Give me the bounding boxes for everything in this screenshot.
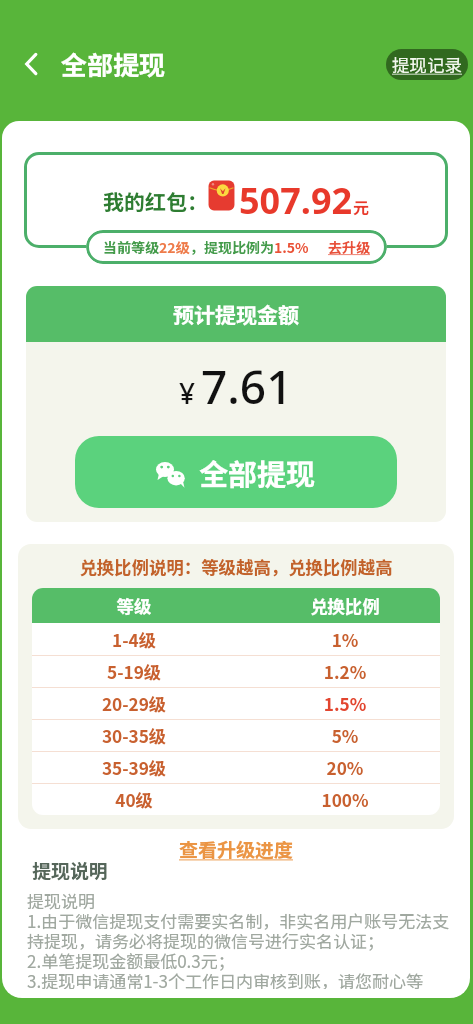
staticText: 20-29级	[32, 691, 236, 716]
button[interactable]: 提现记录	[386, 49, 468, 80]
staticText: 35-39级	[32, 755, 236, 780]
button[interactable]: Back	[4, 39, 60, 89]
staticText: 20%	[243, 755, 440, 780]
staticText: 7.61	[201, 355, 293, 418]
staticText: 1.5%	[274, 237, 309, 257]
staticText: 查看升级进度	[179, 835, 294, 863]
staticText: ¥	[179, 374, 196, 412]
staticText: 22级	[159, 237, 190, 257]
staticText: 去升级	[328, 237, 370, 257]
staticText: 1-4级	[32, 627, 236, 652]
staticText: 5%	[243, 723, 440, 748]
button[interactable]: 查看升级进度	[173, 833, 300, 865]
staticText: 提现记录	[392, 52, 462, 77]
staticText: 1.5%	[243, 691, 440, 716]
staticText: 507.92	[239, 176, 353, 225]
button[interactable]: 当前等级	[86, 230, 387, 264]
staticText: 40级	[32, 787, 236, 812]
staticText: 预计提现金额	[173, 299, 299, 329]
staticText: 全部提现	[61, 45, 166, 83]
staticText: ，提现比例为	[190, 237, 274, 257]
staticText: 兑换比例	[243, 593, 440, 618]
staticText: 提现说明 1.由于微信提现支付需要实名制，非实名用户账号无法支持提现，请务必将提…	[27, 888, 452, 989]
button[interactable]: 全部提现	[75, 436, 397, 508]
staticText: 100%	[243, 787, 440, 812]
staticText: 我的红包：	[103, 186, 208, 216]
staticText: 等级	[32, 593, 236, 618]
staticText: 30-35级	[32, 723, 236, 748]
staticText: 1.2%	[243, 659, 440, 684]
staticText: 5-19级	[32, 659, 236, 684]
staticText: 提现说明	[32, 856, 109, 884]
staticText: 元	[353, 195, 370, 218]
staticText: 1%	[243, 627, 440, 652]
staticText: 当前等级	[103, 237, 159, 257]
staticText: 兑换比例说明：等级越高，兑换比例越高	[18, 554, 454, 579]
staticText: 全部提现	[199, 451, 316, 493]
